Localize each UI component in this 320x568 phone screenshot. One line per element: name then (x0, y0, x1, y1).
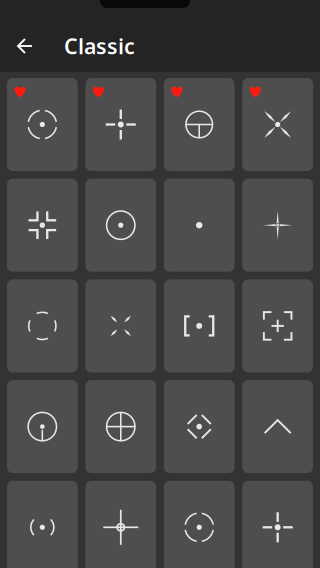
button[interactable]: Crosshair 15 (164, 380, 235, 473)
button[interactable]: Crosshair 7 (164, 179, 235, 272)
button[interactable]: Crosshair 2 (242, 481, 313, 568)
button[interactable]: Crosshair 12 (242, 279, 313, 372)
button[interactable]: Crosshair 8 (242, 179, 313, 272)
button[interactable]: Crosshair 11 (164, 279, 235, 372)
button[interactable]: Crosshair 2 (85, 78, 156, 171)
staticText: Classic (64, 32, 135, 60)
button[interactable]: Crosshair 14 (85, 380, 156, 473)
button[interactable]: Crosshair 6 (85, 179, 156, 272)
button[interactable]: Crosshair 13 (7, 380, 78, 473)
button[interactable]: Back (0, 23, 49, 69)
button[interactable]: Crosshair 5 (7, 179, 78, 272)
button[interactable]: Crosshair 3 (164, 78, 235, 171)
button[interactable]: Crosshair 18 (85, 481, 156, 568)
button[interactable]: Crosshair 9 (7, 279, 78, 372)
button[interactable]: Crosshair 10 (85, 279, 156, 372)
button[interactable]: Crosshair 17 (7, 481, 78, 568)
button[interactable]: Crosshair 1 (7, 78, 78, 171)
button[interactable]: Crosshair 4 (242, 78, 313, 171)
button[interactable]: Crosshair 1 (164, 481, 235, 568)
button[interactable]: Crosshair 16 (242, 380, 313, 473)
